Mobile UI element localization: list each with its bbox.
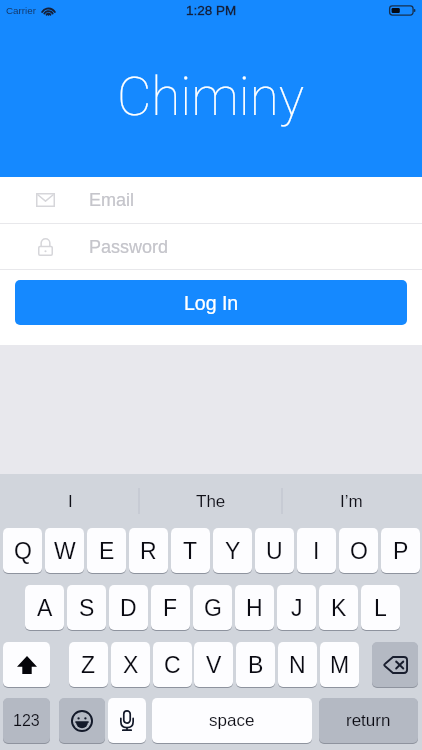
button[interactable]: A — [25, 585, 64, 630]
staticText: Password — [89, 237, 169, 257]
staticText: R — [140, 538, 157, 564]
button[interactable]: Emoji — [59, 698, 105, 743]
staticText: N — [289, 652, 306, 678]
staticText: Z — [81, 652, 96, 678]
button[interactable]: V — [194, 642, 233, 687]
button[interactable]: Z — [69, 642, 108, 687]
button[interactable]: B — [236, 642, 275, 687]
button[interactable]: S — [67, 585, 106, 630]
staticText: C — [164, 652, 181, 678]
staticText: The — [196, 492, 226, 511]
button[interactable]: L — [361, 585, 400, 630]
staticText: Y — [225, 538, 241, 564]
staticText: Chiminy — [117, 66, 305, 128]
staticText: L — [374, 595, 387, 621]
button[interactable]: I — [297, 528, 336, 573]
button[interactable]: Backspace — [372, 642, 418, 687]
button[interactable]: P — [381, 528, 420, 573]
button[interactable]: E — [87, 528, 126, 573]
button[interactable]: J — [277, 585, 316, 630]
staticText: W — [54, 538, 76, 564]
staticText: space — [209, 711, 255, 730]
staticText: M — [330, 652, 350, 678]
button[interactable]: I — [0, 474, 140, 528]
staticText: B — [248, 652, 264, 678]
staticText: V — [206, 652, 222, 678]
staticText: E — [99, 538, 115, 564]
button[interactable]: T — [171, 528, 210, 573]
staticText: F — [163, 595, 178, 621]
button[interactable]: U — [255, 528, 294, 573]
staticText: I — [313, 538, 320, 564]
staticText: J — [291, 595, 303, 621]
staticText: K — [331, 595, 347, 621]
staticText: Log In — [184, 292, 239, 314]
button[interactable]: Email — [0, 177, 422, 223]
staticText: return — [346, 711, 391, 730]
staticText: 123 — [13, 712, 40, 730]
button[interactable]: F — [151, 585, 190, 630]
button[interactable]: O — [339, 528, 378, 573]
staticText: Q — [14, 538, 32, 564]
staticText: 1:28 PM — [186, 3, 237, 18]
button[interactable]: D — [109, 585, 148, 630]
staticText: G — [204, 595, 222, 621]
button[interactable]: H — [235, 585, 274, 630]
button[interactable]: X — [111, 642, 150, 687]
button[interactable]: W — [45, 528, 84, 573]
staticText: D — [120, 595, 137, 621]
staticText: I — [68, 492, 73, 511]
button[interactable]: Q — [3, 528, 42, 573]
button[interactable]: Log In — [15, 280, 407, 325]
button[interactable]: K — [319, 585, 358, 630]
button[interactable]: space — [152, 698, 312, 743]
button[interactable]: I’m — [281, 474, 422, 528]
button[interactable]: M — [320, 642, 359, 687]
staticText: O — [350, 538, 368, 564]
button[interactable]: G — [193, 585, 232, 630]
staticText: S — [79, 595, 95, 621]
staticText: H — [246, 595, 263, 621]
staticText: U — [266, 538, 283, 564]
button[interactable]: Y — [213, 528, 252, 573]
staticText: I’m — [340, 492, 363, 511]
staticText: Email — [89, 190, 135, 210]
button[interactable]: R — [129, 528, 168, 573]
button[interactable]: Shift — [3, 642, 50, 687]
button[interactable]: N — [278, 642, 317, 687]
button[interactable]: Password — [0, 224, 422, 269]
button[interactable]: Dictation — [108, 698, 146, 743]
staticText: T — [183, 538, 198, 564]
staticText: A — [37, 595, 53, 621]
staticText: P — [393, 538, 409, 564]
staticText: Carrier — [6, 5, 36, 16]
button[interactable]: return — [319, 698, 418, 743]
button[interactable]: 123 — [3, 698, 50, 743]
staticText: X — [123, 652, 139, 678]
button[interactable]: The — [140, 474, 281, 528]
button[interactable]: C — [153, 642, 192, 687]
